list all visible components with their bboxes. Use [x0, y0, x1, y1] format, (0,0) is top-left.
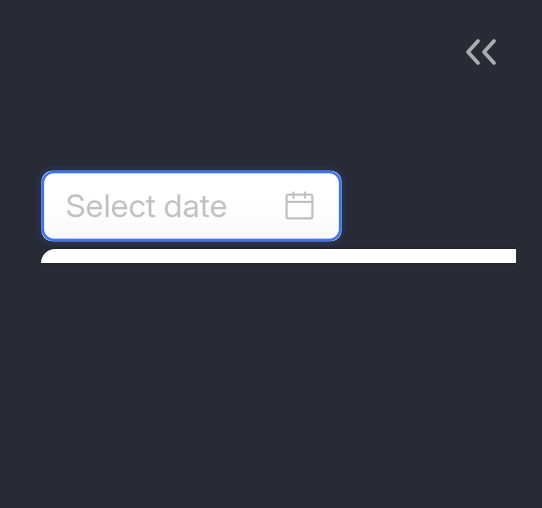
staticText: Select date	[65, 186, 227, 225]
button[interactable]: Select date	[36, 166, 346, 246]
button[interactable]: Calendar	[41, 249, 516, 263]
button[interactable]: Collapse	[450, 24, 512, 80]
